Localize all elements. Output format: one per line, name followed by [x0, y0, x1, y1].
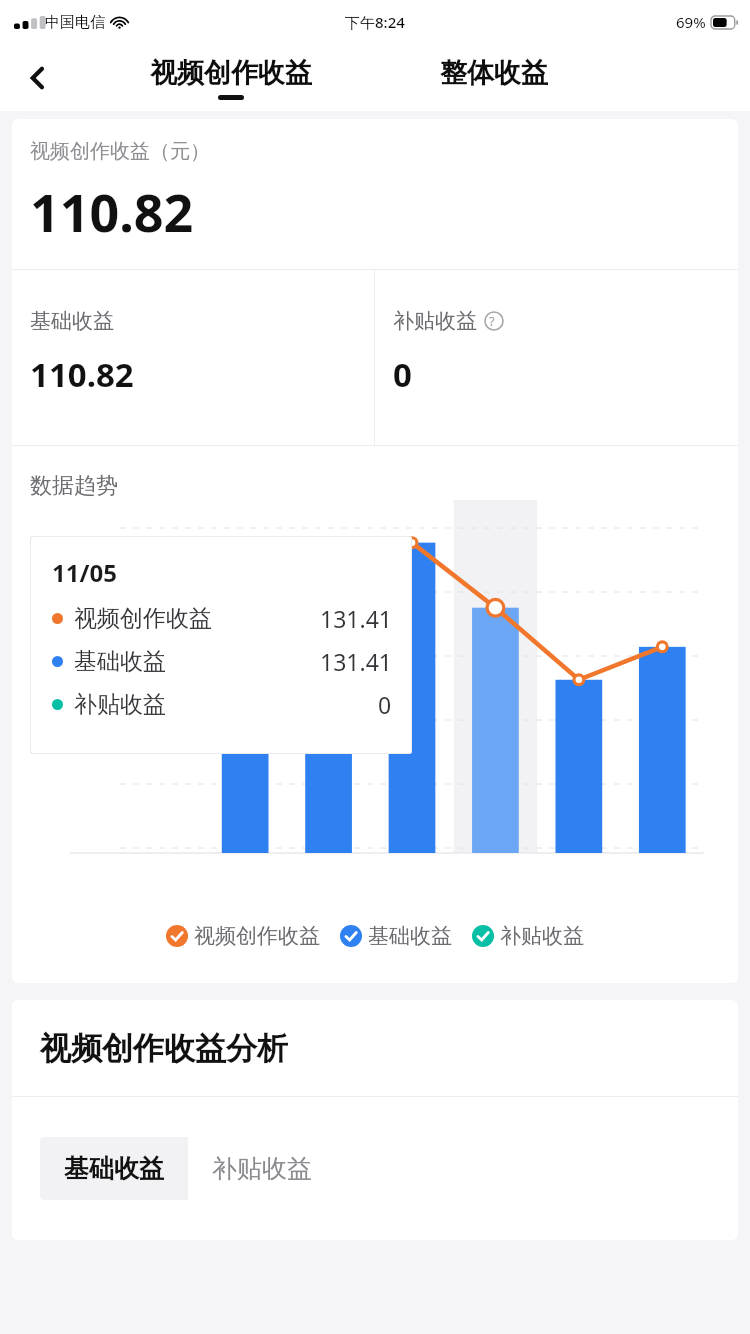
staticText: 131.41 — [320, 603, 392, 634]
staticText: 69% — [676, 12, 706, 32]
button[interactable]: 补贴收益 — [375, 270, 738, 445]
staticText: 补贴收益 — [212, 1153, 312, 1184]
staticText: 补贴收益 — [74, 690, 166, 719]
staticText: 110.82 — [30, 352, 134, 397]
button[interactable]: 整体收益 — [440, 56, 548, 90]
button[interactable]: 视频创作收益 — [150, 56, 312, 100]
staticText: 0 — [393, 352, 412, 397]
staticText: 110.82 — [30, 176, 194, 247]
staticText: 基础收益 — [64, 1153, 164, 1184]
staticText: 视频创作收益 — [74, 604, 212, 633]
button[interactable]: 基础收益 — [12, 270, 374, 445]
button[interactable]: Back — [14, 54, 62, 102]
staticText: ? — [489, 312, 495, 330]
button[interactable]: 基础收益 — [340, 919, 452, 953]
staticText: 11/05 — [52, 556, 117, 589]
staticText: 基础收益 — [30, 308, 114, 334]
staticText: 数据趋势 — [30, 472, 118, 500]
staticText: 基础收益 — [74, 647, 166, 676]
staticText: 131.41 — [320, 646, 392, 677]
button[interactable]: 补贴收益 — [188, 1137, 336, 1200]
staticText: 中国电信 — [45, 13, 105, 32]
button[interactable]: 视频创作收益 — [166, 919, 320, 953]
staticText: 视频创作收益分析 — [40, 1029, 288, 1068]
button[interactable]: 补贴收益 — [472, 919, 584, 953]
staticText: 补贴收益 — [500, 923, 584, 949]
button[interactable]: 基础收益 — [40, 1137, 188, 1200]
staticText: 基础收益 — [368, 923, 452, 949]
staticText: 0 — [378, 689, 392, 720]
staticText: 整体收益 — [440, 56, 548, 90]
staticText: 下午8:24 — [345, 12, 405, 32]
staticText: 视频创作收益 — [150, 56, 312, 90]
staticText: 视频创作收益（元） — [30, 139, 210, 164]
staticText: 视频创作收益 — [194, 923, 320, 949]
staticText: 补贴收益 — [393, 308, 477, 334]
